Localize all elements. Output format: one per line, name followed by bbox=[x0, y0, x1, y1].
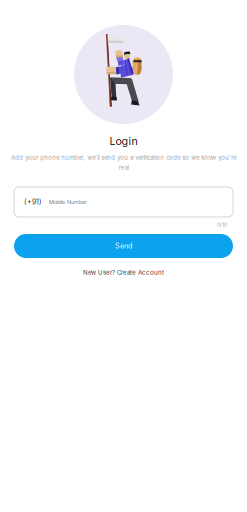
staticText: Mobile Number bbox=[49, 199, 87, 205]
button[interactable]: Send bbox=[14, 234, 233, 258]
staticText: 0/10 bbox=[217, 221, 227, 228]
staticText: Add your phone number, we'll send you a … bbox=[11, 154, 236, 171]
staticText: Login bbox=[109, 134, 137, 147]
staticText: (+91) bbox=[24, 198, 42, 206]
staticText: New User? Create Account bbox=[83, 269, 164, 276]
button[interactable]: New User? Create Account bbox=[0, 268, 247, 277]
staticText: Send bbox=[115, 242, 132, 250]
